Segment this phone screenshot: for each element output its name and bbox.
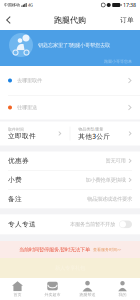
staticText: 当前时间暂停服务,暂时无法下单 — [19, 246, 90, 253]
staticText: 优惠券 — [8, 157, 29, 165]
button[interactable]: Home — [0, 278, 35, 300]
staticText: 跑腿代购 — [54, 15, 86, 25]
staticText: 专人专送 — [8, 220, 36, 228]
staticText: 物品类型/重量 — [78, 126, 103, 132]
staticText: 取件时间 — [8, 127, 24, 132]
staticText: 去哪里取件 — [17, 77, 42, 84]
button[interactable]: 去哪里取件 — [0, 66, 140, 95]
staticText: 本服务当前暂不开放 — [70, 221, 115, 228]
staticText: 外卖超市 — [44, 292, 60, 297]
button[interactable]: Back — [0, 10, 17, 30]
staticText: 中国移动 — [4, 2, 20, 7]
staticText: 17:38 — [123, 1, 136, 9]
button[interactable]: 小费 — [0, 171, 140, 189]
button[interactable]: 取件时间 — [0, 121, 70, 145]
button[interactable]: Food delivery — [35, 278, 70, 300]
button[interactable]: 物品类型/重量 — [70, 121, 140, 145]
staticText: 我的 — [118, 292, 126, 297]
staticText: 钥匙忘家里了?跑腿小哥帮您去取 — [38, 41, 110, 49]
button[interactable]: 专人专送 — [0, 214, 140, 234]
staticText: 其他3公斤 — [78, 132, 110, 141]
button[interactable]: 查看服务时间>> — [93, 247, 121, 252]
staticText: 4G — [28, 2, 33, 8]
staticText: 备注 — [8, 195, 22, 203]
button[interactable]: 钥匙忘家里了?跑腿小哥帮您去取 — [0, 30, 140, 66]
staticText: 查看服务时间>> — [93, 247, 121, 252]
staticText: 立即取件 — [8, 132, 36, 140]
staticText: 加小费抢单更快哦 — [85, 177, 125, 183]
staticText: 订单 — [120, 16, 134, 24]
button[interactable]: Errands — [70, 278, 105, 300]
staticText: 暂无可用 — [105, 157, 125, 164]
staticText: 跑腿帮送 — [79, 292, 95, 297]
staticText: 物品描述或送件要求 — [87, 196, 132, 202]
button[interactable]: Profile — [105, 278, 140, 300]
button[interactable]: 订单 — [114, 10, 140, 30]
button[interactable]: 优惠券 — [0, 151, 140, 170]
staticText: 往哪里送 — [17, 104, 37, 111]
staticText: 小费 — [8, 176, 22, 184]
staticText: 跑腿小哥等您来 — [104, 59, 132, 64]
staticText: 首页 — [13, 292, 21, 297]
button[interactable]: 往哪里送 — [0, 95, 140, 119]
button[interactable]: 备注 — [0, 190, 140, 208]
